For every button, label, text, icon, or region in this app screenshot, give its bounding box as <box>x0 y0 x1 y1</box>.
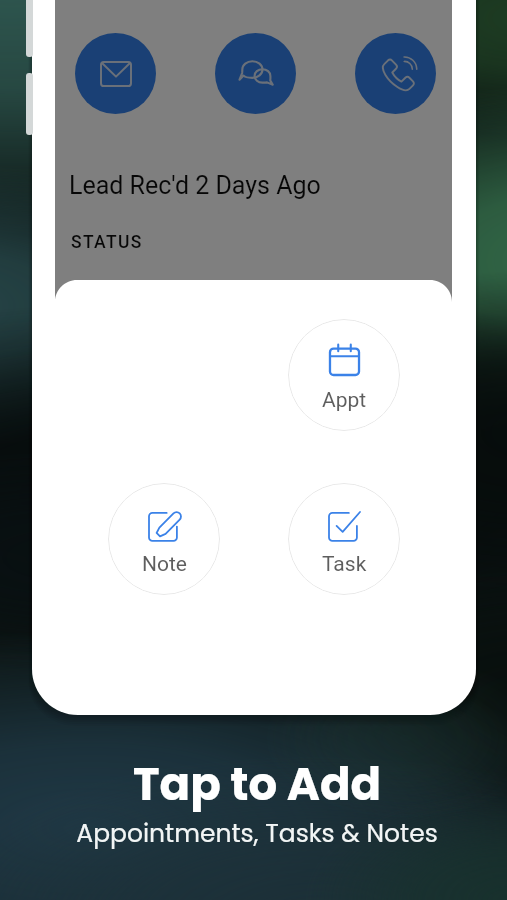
button[interactable]: Call <box>355 33 436 114</box>
staticText: Appt <box>322 388 367 413</box>
button[interactable]: Email <box>75 33 156 114</box>
staticText: STATUS <box>71 232 143 253</box>
staticText: Note <box>142 552 187 577</box>
button[interactable]: Appt <box>288 319 400 431</box>
staticText: Tap to Add <box>133 753 381 816</box>
staticText: Lead Rec'd 2 Days Ago <box>69 171 321 200</box>
staticText: Appointments, Tasks & Notes <box>76 816 438 851</box>
staticText: Task <box>322 552 367 577</box>
button[interactable]: Note <box>108 483 220 595</box>
button[interactable]: Message <box>215 33 296 114</box>
button[interactable]: Task <box>288 483 400 595</box>
